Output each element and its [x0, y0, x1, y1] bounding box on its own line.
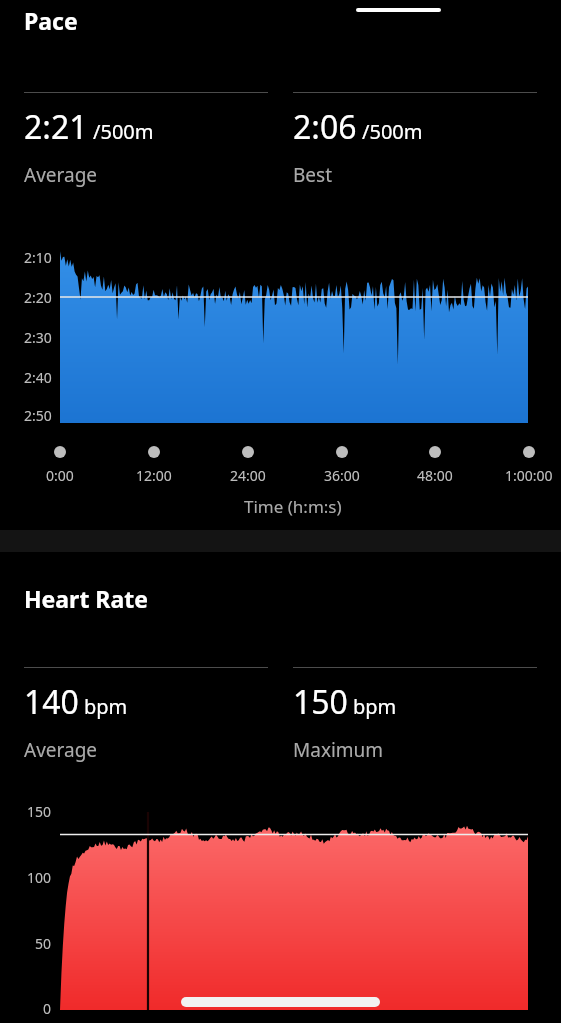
button[interactable]: 2:06 [293, 105, 423, 149]
staticText: 140 [24, 680, 79, 724]
staticText: 50 [35, 934, 52, 953]
staticText: Maximum [293, 737, 384, 763]
staticText: bpm [353, 693, 397, 720]
staticText: 2:10 [24, 248, 52, 267]
button[interactable]: 140 [24, 680, 128, 724]
staticText: 0:00 [46, 466, 74, 485]
staticText: 2:30 [24, 328, 52, 347]
staticText: 2:21 [24, 105, 88, 149]
staticText: Average [24, 737, 98, 763]
staticText: 36:00 [324, 466, 360, 485]
staticText: Pace [24, 5, 78, 36]
staticText: 2:50 [24, 406, 52, 425]
staticText: 100 [27, 868, 52, 887]
staticText: 150 [293, 680, 348, 724]
staticText: 2:20 [24, 288, 52, 307]
staticText: /500m [362, 118, 423, 145]
staticText: 0 [43, 999, 52, 1018]
staticText: 12:00 [136, 466, 172, 485]
other: Home gesture bar [181, 997, 380, 1007]
button[interactable]: 150 [293, 680, 397, 724]
staticText: 2:40 [24, 368, 52, 387]
staticText: Time (h:m:s) [244, 495, 342, 518]
staticText: Best [293, 162, 333, 188]
staticText: 2:06 [293, 105, 357, 149]
staticText: 1:00:00 [505, 466, 553, 485]
staticText: Average [24, 162, 98, 188]
staticText: 48:00 [417, 466, 453, 485]
button[interactable]: 2:21 [24, 105, 154, 149]
staticText: 150 [27, 802, 52, 821]
staticText: bpm [84, 693, 128, 720]
staticText: 24:00 [230, 466, 266, 485]
staticText: /500m [93, 118, 154, 145]
staticText: Heart Rate [24, 583, 148, 614]
